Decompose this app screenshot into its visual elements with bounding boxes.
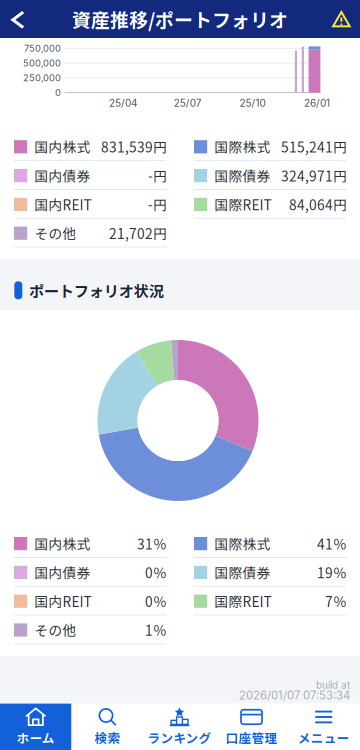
button[interactable]: お知らせ: [321, 0, 360, 38]
staticText: 1％: [145, 620, 167, 640]
staticText: 国内REIT: [34, 591, 91, 611]
staticText: 国際REIT: [214, 194, 271, 214]
staticText: ホーム: [17, 728, 55, 747]
staticText: メニュー: [298, 728, 350, 747]
staticText: 25/10: [239, 97, 265, 109]
staticText: 7％: [325, 591, 347, 611]
button[interactable]: 検索: [71, 704, 143, 750]
staticText: 国内株式: [34, 137, 90, 157]
button[interactable]: 戻る: [0, 1, 38, 39]
staticText: 831,539円: [101, 137, 167, 157]
staticText: 25/04: [109, 97, 137, 109]
staticText: 25/07: [174, 97, 202, 109]
button[interactable]: ホーム: [0, 704, 71, 750]
staticText: 750,000: [24, 43, 61, 54]
staticText: 検索: [94, 728, 120, 747]
staticText: 250,000: [23, 72, 61, 83]
staticText: ポートフォリオ状況: [29, 279, 164, 301]
staticText: 国内REIT: [34, 194, 91, 214]
staticText: -円: [148, 194, 167, 214]
staticText: 324,971円: [281, 165, 347, 185]
staticText: 国内債券: [34, 562, 90, 582]
staticText: 口座管理: [225, 728, 277, 747]
staticText: その他: [34, 620, 76, 640]
staticText: build at: [316, 679, 350, 691]
staticText: 国際債券: [214, 165, 270, 185]
staticText: 国内株式: [34, 533, 90, 553]
staticText: 21,702円: [109, 223, 167, 243]
staticText: 515,241円: [281, 137, 347, 157]
staticText: 31％: [137, 533, 167, 553]
staticText: 84,064円: [289, 194, 347, 214]
staticText: 資産推移/ポートフォリオ: [72, 5, 288, 33]
staticText: 2026/01/07 07:53:34: [239, 689, 350, 702]
staticText: 国際REIT: [214, 591, 271, 611]
staticText: その他: [34, 223, 76, 243]
staticText: 41％: [317, 533, 347, 553]
button[interactable]: ランキング: [143, 704, 215, 750]
staticText: -円: [148, 165, 167, 185]
staticText: 0％: [145, 562, 167, 582]
staticText: ランキング: [147, 728, 211, 747]
staticText: 19％: [317, 562, 347, 582]
staticText: 500,000: [23, 57, 61, 69]
button[interactable]: メニュー: [287, 704, 360, 750]
staticText: 0％: [145, 591, 167, 611]
button[interactable]: 口座管理: [215, 704, 287, 750]
staticText: 国際株式: [214, 137, 270, 157]
staticText: 国際債券: [214, 562, 270, 582]
staticText: 0: [55, 87, 61, 98]
staticText: 26/01: [304, 97, 330, 109]
staticText: 国際株式: [214, 533, 270, 553]
staticText: 国内債券: [34, 165, 90, 185]
